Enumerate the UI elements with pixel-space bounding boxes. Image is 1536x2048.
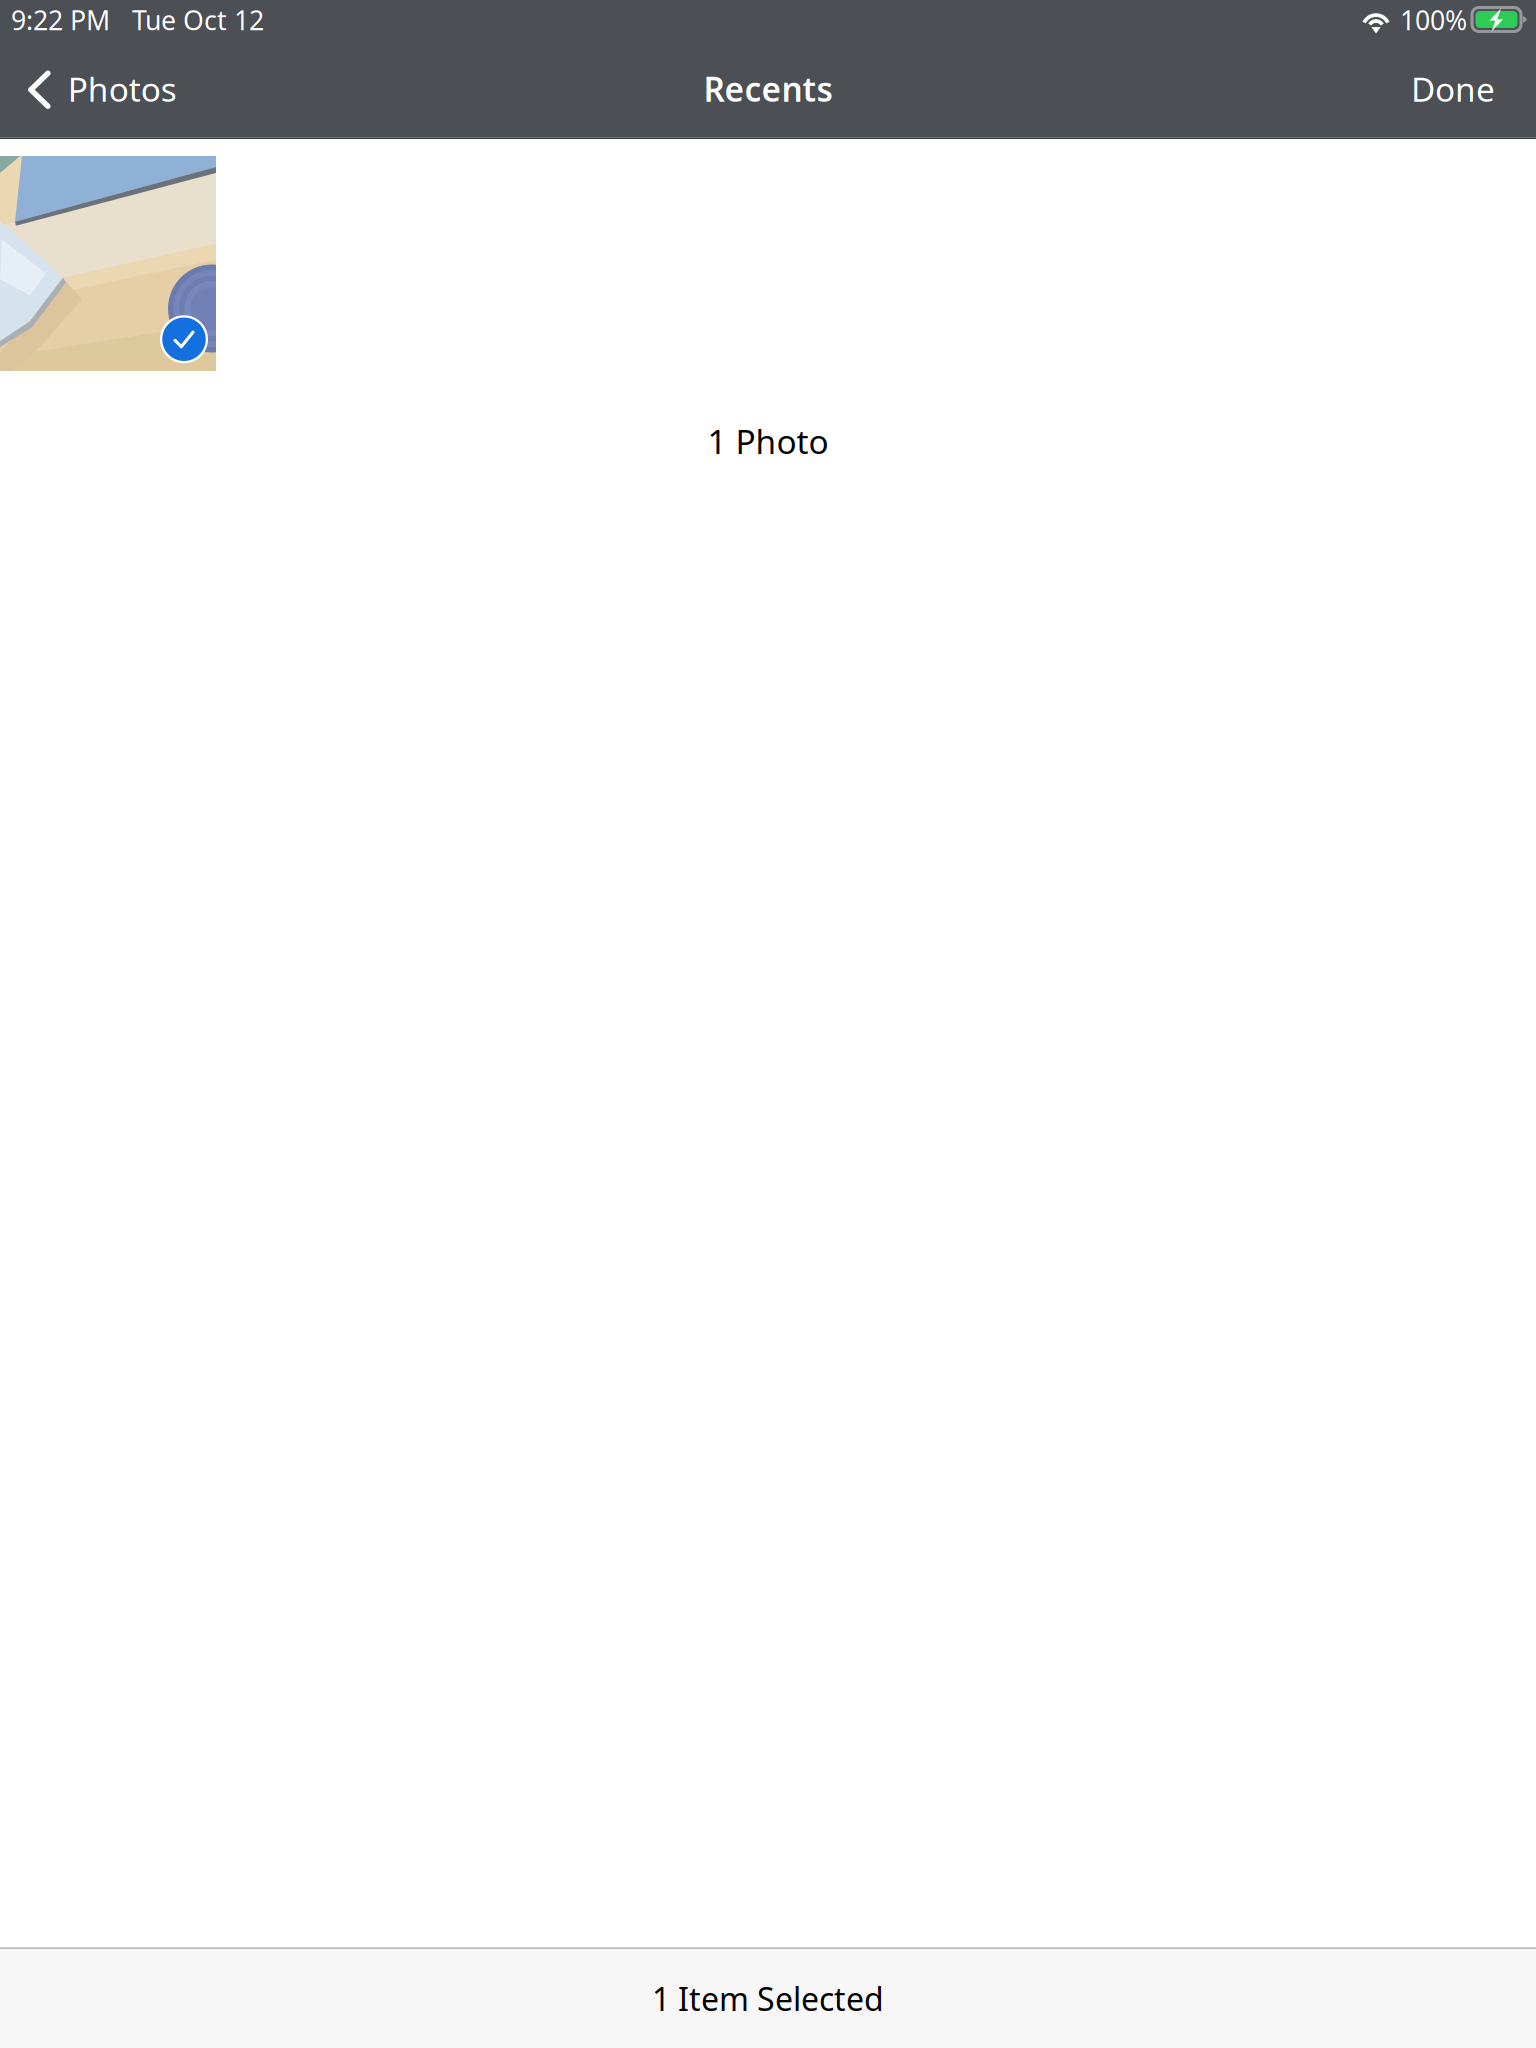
staticText: Recents <box>703 67 832 111</box>
staticText: 9:22 PM <box>11 2 110 38</box>
button[interactable] <box>0 156 216 371</box>
button[interactable]: Photos <box>0 45 201 132</box>
button[interactable]: Done <box>1377 45 1536 132</box>
staticText: Photos <box>68 67 177 111</box>
staticText: Tue Oct 12 <box>132 2 264 38</box>
staticText: 1 Item Selected <box>652 1977 884 2020</box>
staticText: 1 Photo <box>707 419 828 463</box>
staticText: 100% <box>1400 2 1467 38</box>
staticText: Done <box>1411 67 1495 111</box>
